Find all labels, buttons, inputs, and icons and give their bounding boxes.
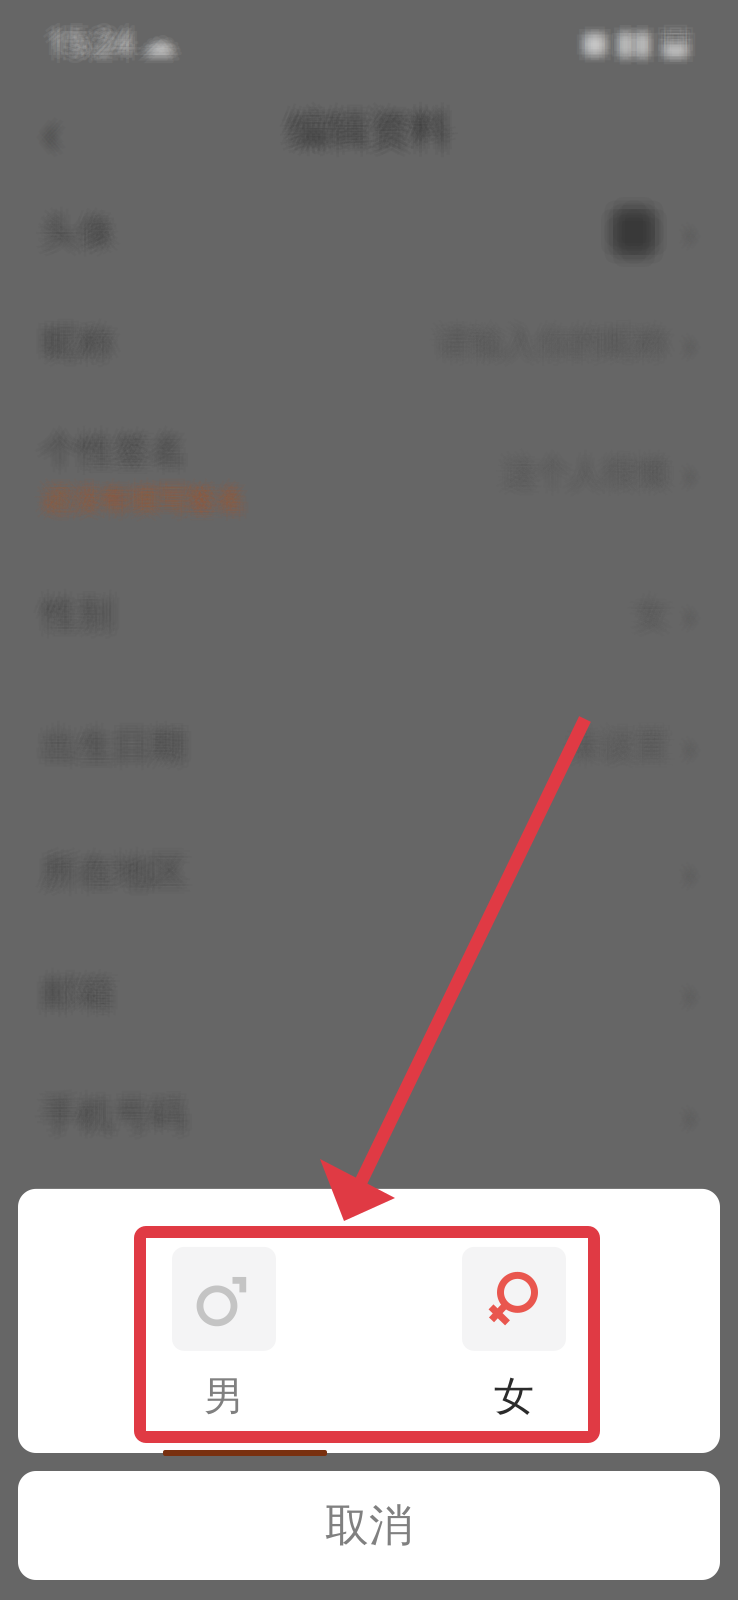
staticText: 未设置 (569, 721, 668, 762)
staticText: 邮箱 (45, 974, 117, 1018)
staticText: ◼ ▮▮ ⬓ (576, 19, 684, 54)
staticText: 所在地区 (45, 853, 189, 897)
staticText: 出生日期 (39, 727, 183, 771)
staticText: 请输入你的昵称 (437, 330, 668, 371)
staticText: ‹ (45, 88, 63, 166)
staticText: 昵称 (36, 315, 108, 359)
staticText: 头像 (38, 210, 110, 254)
staticText: 出生日期 (48, 718, 192, 762)
staticText: 还没有填写签名 (39, 484, 242, 520)
staticText: ‹ (42, 83, 60, 161)
staticText: 昵称 (36, 326, 108, 371)
staticText: 邮箱 (45, 968, 117, 1012)
staticText: 头像 (45, 213, 117, 257)
staticText: 昵称 (42, 329, 114, 373)
staticText: ‹ (36, 85, 54, 163)
staticText: 个性签名 (48, 423, 192, 467)
staticText: 手机号码 (42, 1089, 186, 1133)
staticText: 个性签名 (39, 425, 183, 470)
staticText: ‹ (46, 91, 64, 169)
staticText: 所在地区 (45, 847, 189, 891)
staticText: 15:24 ☁ (56, 20, 183, 64)
staticText: ‹ (42, 91, 60, 169)
staticText: 15:24 ☁ (51, 17, 178, 61)
staticText: 性别 (50, 592, 122, 636)
staticText: ‹ (50, 91, 68, 169)
staticText: 个性签名 (42, 436, 186, 481)
staticText: 未设置 (573, 725, 672, 766)
staticText: 昵称 (34, 321, 106, 365)
staticText: 出生日期 (42, 732, 186, 776)
staticText: 女 (627, 593, 660, 634)
staticText: 头像 (36, 204, 108, 248)
staticText: ◼ ▮▮ ⬓ (588, 30, 696, 65)
staticText: 所在地区 (42, 846, 186, 890)
staticText: 请输入你的昵称 (437, 318, 668, 359)
staticText: 出生日期 (42, 716, 186, 760)
staticText: 未设置 (572, 723, 671, 764)
staticText: 男 (204, 1372, 244, 1421)
staticText: 个性签名 (34, 428, 178, 473)
button[interactable]: 男 (144, 1247, 304, 1421)
staticText: 未设置 (566, 723, 665, 764)
staticText: 还没有填写签名 (46, 482, 249, 518)
staticText: ◼ ▮▮ ⬓ (579, 27, 687, 62)
staticText: 还没有填写签名 (50, 482, 253, 518)
staticText: 女 (635, 585, 668, 626)
button[interactable]: 女 (434, 1247, 594, 1421)
staticText: 女 (629, 599, 662, 640)
staticText: ‹ (36, 97, 54, 175)
staticText: 还没有填写签名 (39, 479, 242, 515)
staticText: 还没有填写签名 (36, 476, 239, 512)
button[interactable]: 取消 (18, 1471, 720, 1580)
staticText: 所在地区 (48, 855, 192, 900)
staticText: ‹ (45, 94, 63, 172)
staticText: 所在地区 (42, 854, 186, 898)
staticText: 取消 (325, 1498, 413, 1552)
staticText: 编辑资料 (287, 109, 451, 159)
staticText: 性别 (45, 595, 117, 639)
